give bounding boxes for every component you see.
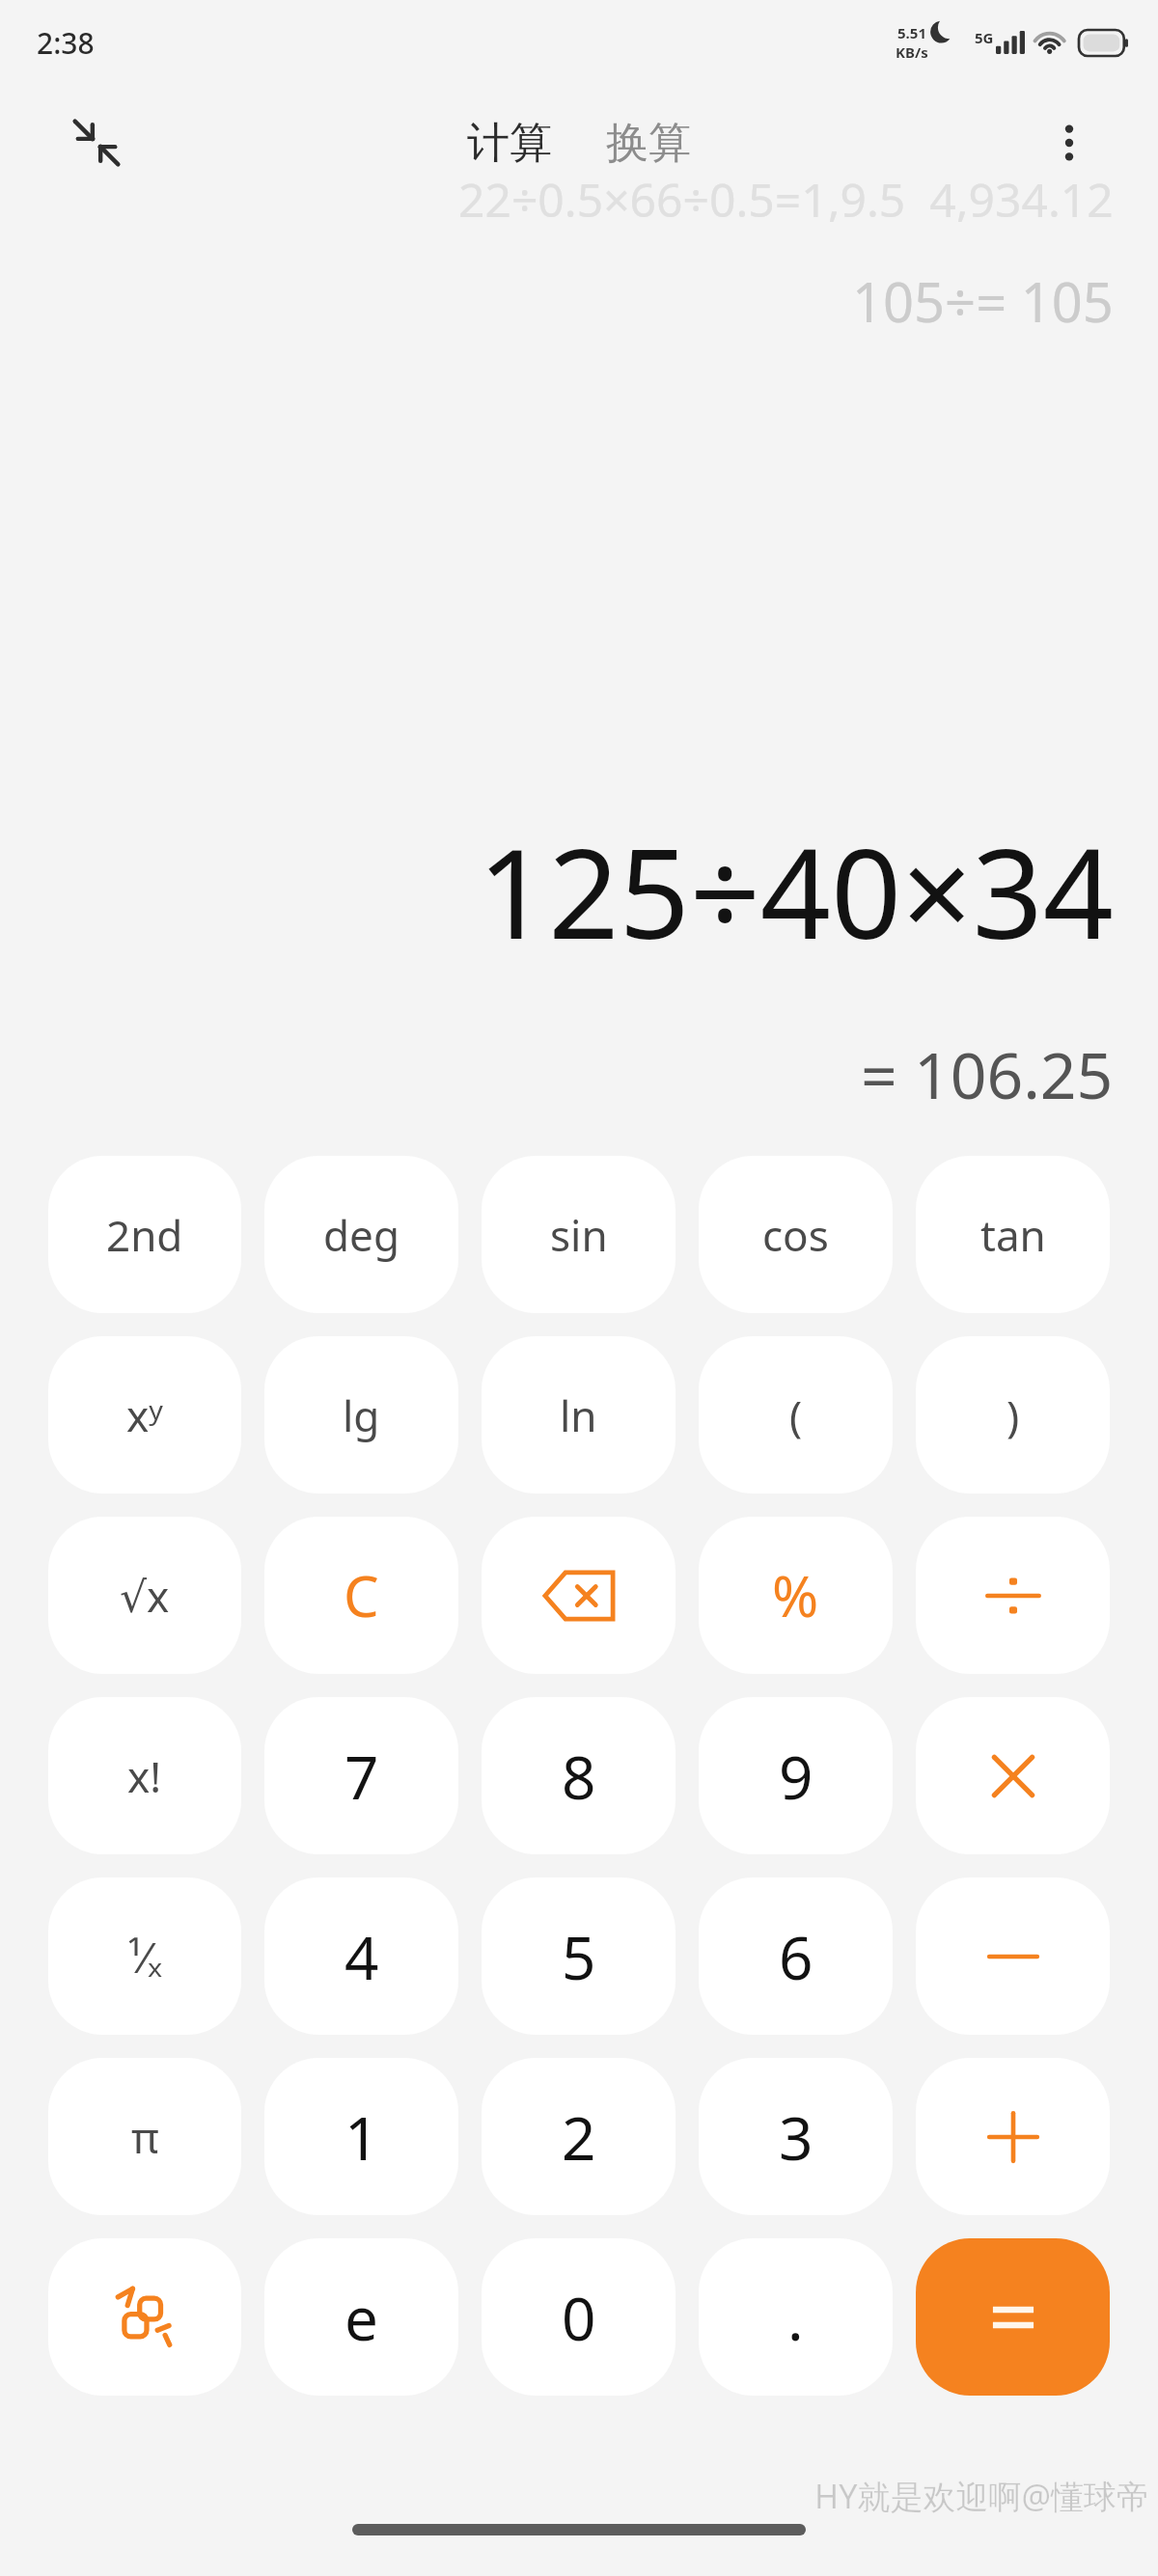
button[interactable]: sin: [482, 1156, 675, 1313]
staticText: 22÷0.5×66÷0.5=1,9.5 4,934.12: [458, 168, 1114, 222]
button[interactable]: x!: [48, 1697, 241, 1854]
staticText: 换算: [606, 117, 691, 170]
button[interactable]: 1: [264, 2058, 458, 2215]
staticText: KB/s: [896, 42, 928, 62]
staticText: 5.51: [897, 23, 926, 42]
button[interactable]: C: [264, 1517, 458, 1674]
button[interactable]: Add: [916, 2058, 1110, 2215]
button[interactable]: xʸ: [48, 1336, 241, 1494]
staticText: 8: [562, 1736, 596, 1817]
staticText: 6: [779, 1916, 813, 1997]
staticText: xʸ: [126, 1386, 163, 1444]
button[interactable]: 4: [264, 1877, 458, 2035]
button[interactable]: 计算: [457, 109, 562, 178]
staticText: C: [344, 1557, 379, 1633]
staticText: 3: [779, 2096, 813, 2178]
staticText: 0: [562, 2277, 596, 2358]
staticText: %: [772, 1557, 819, 1633]
staticText: .: [787, 2277, 804, 2358]
button[interactable]: Divide: [916, 1517, 1110, 1674]
staticText: 9: [779, 1736, 813, 1817]
staticText: x!: [127, 1747, 162, 1805]
staticText: cos: [762, 1206, 829, 1264]
staticText: ): [1006, 1386, 1020, 1444]
staticText: sin: [550, 1206, 608, 1264]
button[interactable]: 2nd: [48, 1156, 241, 1313]
staticText: e: [345, 2277, 378, 2358]
staticText: tan: [980, 1206, 1046, 1264]
staticText: 2: [562, 2096, 596, 2178]
staticText: π: [131, 2108, 159, 2166]
button[interactable]: cos: [699, 1156, 893, 1313]
staticText: 4: [345, 1916, 379, 1997]
button[interactable]: Subtract: [916, 1877, 1110, 2035]
button[interactable]: 7: [264, 1697, 458, 1854]
button[interactable]: (: [699, 1336, 893, 1494]
button[interactable]: 0: [482, 2238, 675, 2396]
staticText: ¹⁄ₓ: [127, 1928, 163, 1986]
button[interactable]: ¹⁄ₓ: [48, 1877, 241, 2035]
button[interactable]: 8: [482, 1697, 675, 1854]
staticText: 2:38: [37, 23, 95, 63]
staticText: 1: [345, 2096, 379, 2178]
staticText: HY就是欢迎啊@懂球帝: [814, 2474, 1150, 2518]
button[interactable]: ): [916, 1336, 1110, 1494]
button[interactable]: 6: [699, 1877, 893, 2035]
staticText: √x: [120, 1567, 170, 1625]
button[interactable]: Scientific functions: [48, 2238, 241, 2396]
button[interactable]: √x: [48, 1517, 241, 1674]
staticText: 5: [562, 1916, 596, 1997]
staticText: lg: [343, 1386, 380, 1444]
button[interactable]: ln: [482, 1336, 675, 1494]
staticText: 计算: [467, 117, 552, 170]
button[interactable]: π: [48, 2058, 241, 2215]
button[interactable]: Multiply: [916, 1697, 1110, 1854]
button[interactable]: e: [264, 2238, 458, 2396]
button[interactable]: 2: [482, 2058, 675, 2215]
button[interactable]: lg: [264, 1336, 458, 1494]
button[interactable]: Equals: [916, 2238, 1110, 2396]
button[interactable]: Backspace: [482, 1517, 675, 1674]
button[interactable]: deg: [264, 1156, 458, 1313]
staticText: 2nd: [106, 1206, 183, 1264]
staticText: 105÷= 105: [852, 264, 1114, 338]
staticText: 125÷40×34: [478, 807, 1114, 974]
staticText: (: [789, 1386, 803, 1444]
button[interactable]: 9: [699, 1697, 893, 1854]
button[interactable]: More options: [1031, 104, 1108, 181]
button[interactable]: .: [699, 2238, 893, 2396]
staticText: = 106.25: [861, 1030, 1114, 1117]
staticText: 7: [345, 1736, 379, 1817]
button[interactable]: Collapse: [58, 104, 135, 181]
staticText: ln: [560, 1386, 597, 1444]
button[interactable]: 5: [482, 1877, 675, 2035]
button[interactable]: 3: [699, 2058, 893, 2215]
staticText: deg: [323, 1206, 400, 1264]
button[interactable]: 换算: [596, 109, 701, 178]
button[interactable]: %: [699, 1517, 893, 1674]
staticText: 5G: [975, 28, 994, 47]
button[interactable]: tan: [916, 1156, 1110, 1313]
